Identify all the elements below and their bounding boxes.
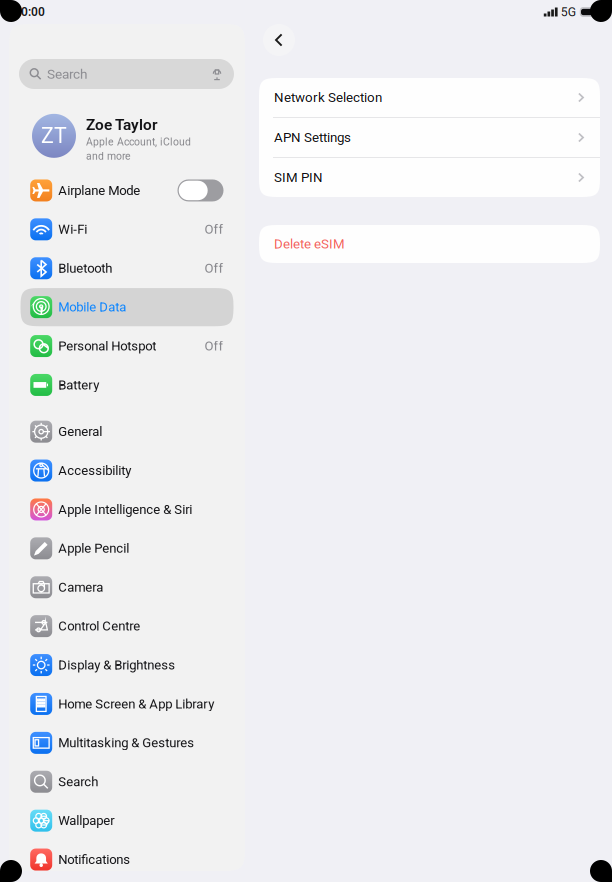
staticText: 5G <box>561 5 576 19</box>
button[interactable]: Mobile Data <box>9 288 245 327</box>
staticText: Control Centre <box>58 618 140 634</box>
staticText: Display & Brightness <box>58 657 175 673</box>
staticText: Off <box>204 261 223 276</box>
staticText: Off <box>204 222 223 237</box>
staticText: General <box>58 424 102 439</box>
button[interactable]: Back <box>263 24 295 56</box>
staticText: Zoe Taylor <box>86 116 158 134</box>
button[interactable]: Personal Hotspot <box>9 327 245 365</box>
staticText: Airplane Mode <box>58 183 140 198</box>
staticText: Network Selection <box>274 90 382 105</box>
staticText: Accessibility <box>58 463 131 478</box>
staticText: Apple Pencil <box>58 541 129 556</box>
button[interactable]: SIM PIN <box>259 158 600 197</box>
button[interactable]: Search <box>19 59 234 89</box>
staticText: SIM PIN <box>274 170 323 185</box>
button[interactable]: Display & Brightness <box>9 646 245 684</box>
staticText: Off <box>204 338 223 354</box>
button[interactable]: Wi-Fi <box>9 210 245 249</box>
button[interactable]: APN Settings <box>259 118 600 157</box>
staticText: APN Settings <box>274 130 351 145</box>
staticText: Wallpaper <box>58 813 114 828</box>
staticText: Multitasking & Gestures <box>58 735 194 750</box>
button[interactable]: Control Centre <box>9 607 245 646</box>
button[interactable]: Battery <box>9 365 245 404</box>
staticText: Delete eSIM <box>274 236 345 252</box>
button[interactable]: Airplane Mode <box>9 171 245 210</box>
button[interactable]: Apple Pencil <box>9 529 245 568</box>
staticText: Apple Intelligence & Siri <box>58 502 192 517</box>
button[interactable]: Wallpaper <box>9 801 245 840</box>
button[interactable]: Bluetooth <box>9 249 245 288</box>
staticText: Mobile Data <box>58 299 126 315</box>
button[interactable]: Home Screen & App Library <box>9 684 245 723</box>
button[interactable]: Network Selection <box>259 78 600 117</box>
button[interactable]: Notifications <box>9 840 245 879</box>
staticText: 10:00 <box>14 5 45 19</box>
button[interactable]: Search <box>9 762 245 801</box>
button[interactable]: Accessibility <box>9 451 245 490</box>
button[interactable]: Apple Intelligence & Siri <box>9 490 245 529</box>
staticText: Battery <box>58 377 99 393</box>
staticText: Home Screen & App Library <box>58 696 214 712</box>
button[interactable]: Camera <box>9 568 245 607</box>
button[interactable]: Delete eSIM <box>259 225 600 263</box>
button[interactable]: General <box>9 412 245 451</box>
staticText: Camera <box>58 580 103 595</box>
staticText: ZT <box>41 123 67 148</box>
button[interactable]: ZT <box>9 105 245 171</box>
staticText: Personal Hotspot <box>58 338 156 354</box>
staticText: Search <box>47 66 87 82</box>
staticText: Wi-Fi <box>58 222 87 237</box>
staticText: Notifications <box>58 852 130 867</box>
staticText: Apple Account, iCloud <box>86 136 191 148</box>
staticText: Bluetooth <box>58 261 112 276</box>
staticText: Search <box>58 774 98 789</box>
staticText: and more <box>86 150 131 162</box>
button[interactable]: Multitasking & Gestures <box>9 723 245 762</box>
